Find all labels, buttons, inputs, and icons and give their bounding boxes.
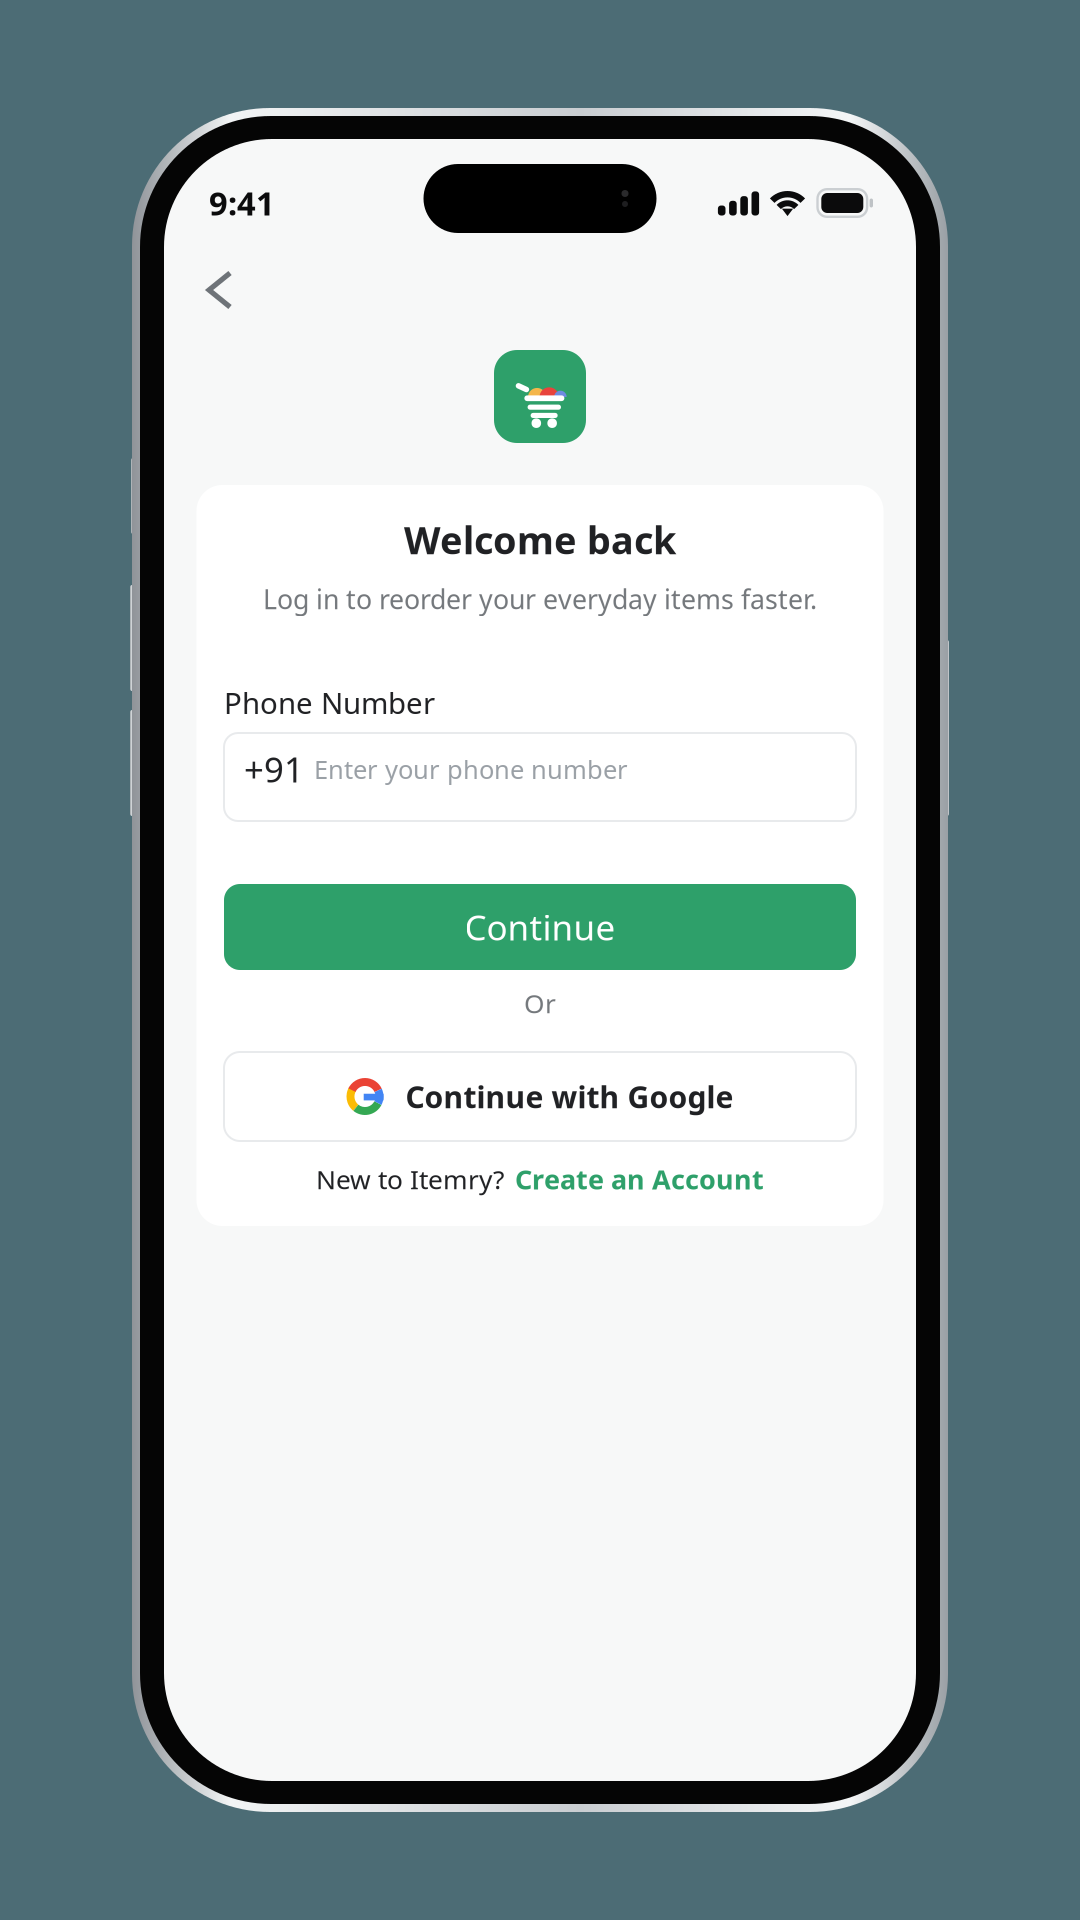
staticText: Create an Account xyxy=(515,1161,764,1197)
button[interactable]: New to Itemry? xyxy=(316,1157,764,1201)
staticText: Enter your phone number xyxy=(314,752,628,786)
button[interactable]: Continue xyxy=(224,884,856,970)
button[interactable]: Back xyxy=(189,254,250,326)
staticText: New to Itemry? xyxy=(316,1161,504,1197)
staticText: Phone Number xyxy=(224,682,435,722)
staticText: Continue with Google xyxy=(405,1076,733,1117)
button[interactable]: Continue with Google xyxy=(224,1052,856,1141)
staticText: +91 xyxy=(244,745,304,793)
staticText: Or xyxy=(524,985,556,1021)
staticText: Welcome back xyxy=(404,514,676,565)
staticText: 9:41 xyxy=(209,181,275,225)
staticText: Continue xyxy=(464,903,615,951)
staticText: Log in to reorder your everyday items fa… xyxy=(263,581,817,617)
